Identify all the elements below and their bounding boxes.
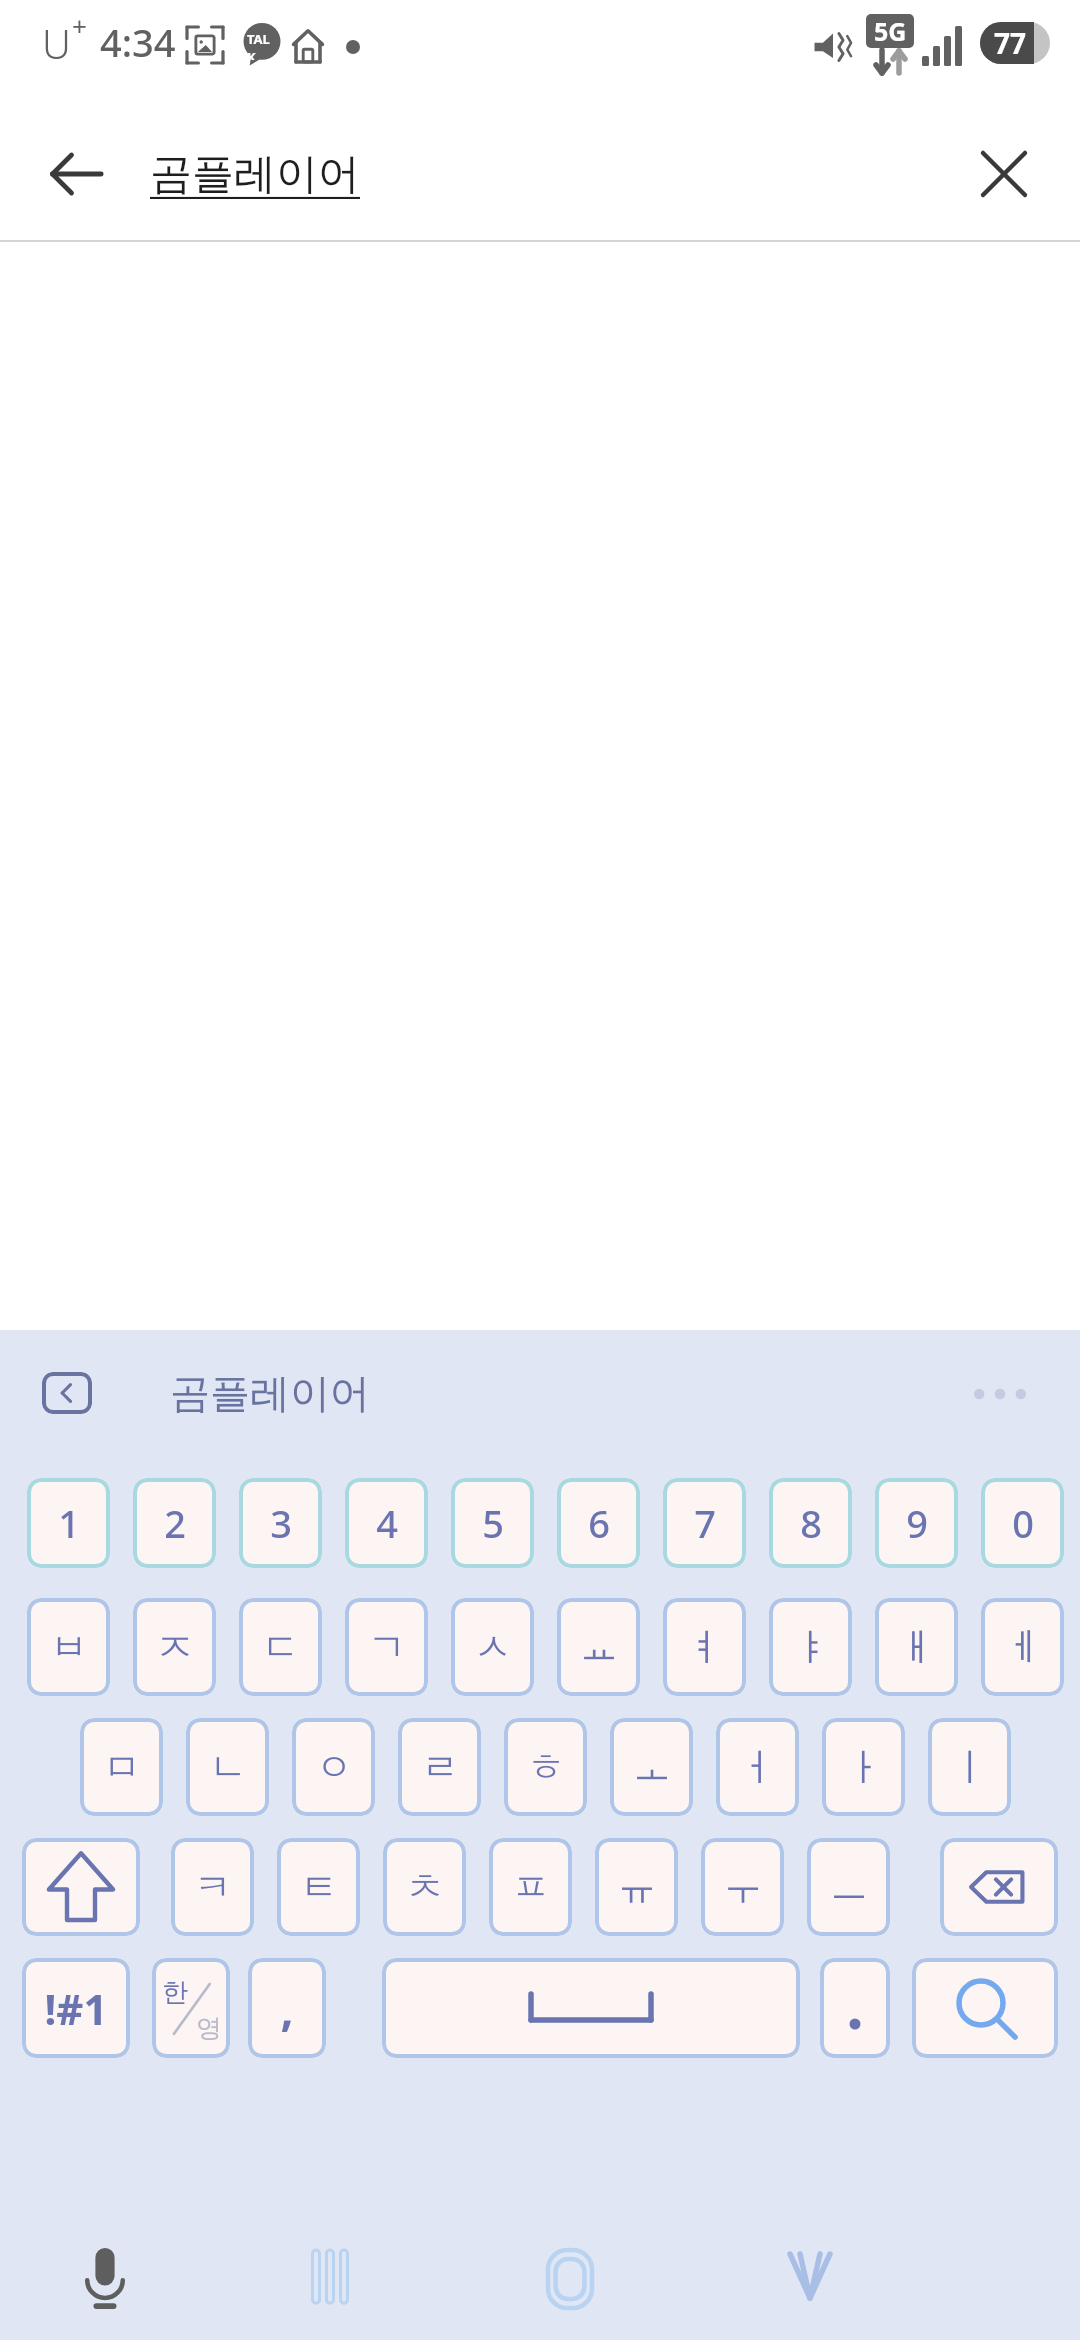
staticText: 1 — [58, 1497, 80, 1549]
button[interactable]: 3 — [239, 1478, 322, 1568]
button[interactable]: 8 — [769, 1478, 852, 1568]
staticText: TALK — [247, 30, 277, 60]
staticText: ㅋ — [194, 1863, 232, 1911]
button[interactable]: ㅠ — [595, 1838, 678, 1936]
staticText: ㅌ — [300, 1863, 338, 1911]
staticText: ㄴ — [209, 1743, 247, 1791]
button[interactable]: ㅑ — [769, 1598, 852, 1696]
staticText: 4 — [376, 1497, 398, 1549]
button[interactable]: 곰플레이어 — [150, 128, 360, 220]
button[interactable]: ㄷ — [239, 1598, 322, 1696]
button[interactable]: Language — [152, 1958, 230, 2058]
staticText: 2 — [164, 1497, 186, 1549]
staticText: ㄱ — [368, 1623, 406, 1671]
staticText: ㅂ — [50, 1623, 88, 1671]
button[interactable]: ㅛ — [557, 1598, 640, 1696]
staticText: 곰플레이어 — [150, 148, 360, 201]
staticText: ㅑ — [792, 1623, 830, 1671]
button[interactable]: ㅁ — [80, 1718, 163, 1816]
button[interactable]: ㅏ — [822, 1718, 905, 1816]
button[interactable]: 9 — [875, 1478, 958, 1568]
button[interactable]: ㅇ — [292, 1718, 375, 1816]
button[interactable]: ㅡ — [807, 1838, 890, 1936]
button[interactable]: !#1 — [22, 1958, 130, 2058]
staticText: ㅊ — [406, 1863, 444, 1911]
button[interactable]: ㅔ — [981, 1598, 1064, 1696]
button[interactable]: ㅍ — [489, 1838, 572, 1936]
button[interactable]: 5 — [451, 1478, 534, 1568]
button[interactable]: Hide keyboard — [690, 2232, 930, 2340]
staticText: 77 — [994, 24, 1027, 62]
staticText: ㅕ — [686, 1623, 724, 1671]
staticText: ㅣ — [951, 1743, 989, 1791]
button[interactable]: 1 — [27, 1478, 110, 1568]
button[interactable]: ㅐ — [875, 1598, 958, 1696]
button[interactable]: ㄹ — [398, 1718, 481, 1816]
staticText: 영 — [196, 2012, 222, 2045]
staticText: 5G — [874, 14, 907, 48]
staticText: ㅐ — [898, 1623, 936, 1671]
button[interactable]: ㅂ — [27, 1598, 110, 1696]
staticText: 곰플레이어 — [170, 1368, 370, 1418]
staticText: ㅓ — [739, 1743, 777, 1791]
button[interactable]: Period — [820, 1958, 890, 2058]
button[interactable]: 곰플레이어 — [170, 1354, 370, 1432]
staticText: ㅗ — [633, 1743, 671, 1791]
staticText: 6 — [588, 1497, 610, 1549]
staticText: ㅜ — [724, 1863, 762, 1911]
button[interactable]: Search — [912, 1958, 1058, 2058]
button[interactable]: ㅊ — [383, 1838, 466, 1936]
staticText: ㅁ — [103, 1743, 141, 1791]
staticText: ㅇ — [315, 1743, 353, 1791]
button[interactable]: Back — [30, 128, 122, 220]
button[interactable]: ㅌ — [277, 1838, 360, 1936]
button[interactable]: ㅎ — [504, 1718, 587, 1816]
button[interactable]: ㅗ — [610, 1718, 693, 1816]
staticText: ㅏ — [845, 1743, 883, 1791]
staticText: ㅎ — [527, 1743, 565, 1791]
staticText: + — [72, 8, 87, 43]
staticText: ㅈ — [156, 1623, 194, 1671]
staticText: 0 — [1012, 1497, 1034, 1549]
staticText: ㅛ — [580, 1623, 618, 1671]
button[interactable]: 2 — [133, 1478, 216, 1568]
staticText: ㅠ — [618, 1863, 656, 1911]
button[interactable]: Recent apps — [210, 2232, 450, 2340]
staticText: 4:34 — [100, 16, 176, 68]
button[interactable]: Home — [450, 2232, 690, 2340]
button[interactable]: 0 — [981, 1478, 1064, 1568]
button[interactable]: ㅜ — [701, 1838, 784, 1936]
button[interactable]: ㅈ — [133, 1598, 216, 1696]
button[interactable]: ㅕ — [663, 1598, 746, 1696]
button[interactable]: Voice input — [0, 2232, 210, 2340]
staticText: !#1 — [44, 1980, 108, 2037]
button[interactable]: Shift — [22, 1838, 140, 1936]
staticText: ㄷ — [262, 1623, 300, 1671]
staticText: U — [42, 16, 71, 70]
staticText: 9 — [906, 1497, 928, 1549]
button[interactable]: Space — [382, 1958, 800, 2058]
staticText: 3 — [270, 1497, 292, 1549]
button[interactable]: Close — [958, 128, 1050, 220]
button[interactable]: ㅅ — [451, 1598, 534, 1696]
button[interactable]: ㅣ — [928, 1718, 1011, 1816]
staticText: ㄹ — [421, 1743, 459, 1791]
staticText: ㅔ — [1004, 1623, 1042, 1671]
staticText: 5 — [482, 1497, 504, 1549]
staticText: 8 — [800, 1497, 822, 1549]
button[interactable]: 7 — [663, 1478, 746, 1568]
button[interactable]: Backspace — [940, 1838, 1058, 1936]
staticText: ㅡ — [830, 1863, 868, 1911]
button[interactable]: More options — [960, 1366, 1040, 1422]
button[interactable]: 6 — [557, 1478, 640, 1568]
staticText: ㅅ — [474, 1623, 512, 1671]
staticText: , — [280, 1977, 294, 2040]
button[interactable]: ㄴ — [186, 1718, 269, 1816]
button[interactable]: 4 — [345, 1478, 428, 1568]
button[interactable]: ㄱ — [345, 1598, 428, 1696]
button[interactable]: , — [248, 1958, 326, 2058]
button[interactable]: Previous suggestions — [42, 1372, 92, 1414]
button[interactable]: ㅓ — [716, 1718, 799, 1816]
button[interactable]: ㅋ — [171, 1838, 254, 1936]
staticText: 한 — [162, 1976, 188, 2009]
